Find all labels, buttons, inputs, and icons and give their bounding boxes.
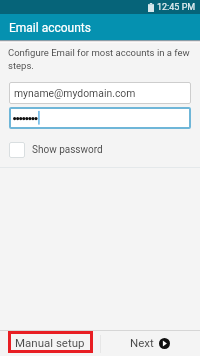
staticText: 12:45 PM xyxy=(157,2,196,13)
button[interactable] xyxy=(9,107,191,129)
staticText: Email accounts xyxy=(9,21,91,35)
staticText: Show password xyxy=(32,144,103,156)
staticText: Manual setup xyxy=(15,336,85,349)
button[interactable]: Show password xyxy=(9,142,103,158)
staticText: Configure Email for most accounts in a f… xyxy=(8,47,191,72)
staticText: myname@mydomain.com xyxy=(14,87,136,99)
button[interactable]: Next xyxy=(101,331,200,356)
staticText: Next xyxy=(130,336,154,349)
button[interactable]: Manual setup xyxy=(0,331,100,356)
button[interactable]: myname@mydomain.com xyxy=(9,82,191,104)
